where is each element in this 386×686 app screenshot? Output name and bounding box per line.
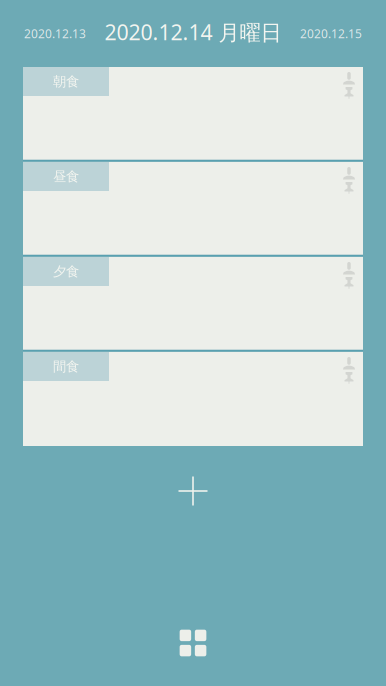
button[interactable]: 夕食 (23, 257, 363, 350)
staticText: 2020.12.15 (300, 25, 362, 41)
button[interactable]: All records (154, 615, 232, 671)
staticText: 間食 (53, 358, 79, 375)
staticText: 2020.12.13 (24, 25, 86, 41)
button[interactable]: 朝食 (23, 67, 363, 160)
button[interactable]: 間食 (23, 352, 363, 446)
staticText: 昼食 (53, 168, 79, 185)
button[interactable]: 2020.12.13 (0, 13, 94, 53)
button[interactable]: Add meal entry (154, 446, 232, 536)
staticText: 2020.12.14 月曜日 (104, 18, 281, 46)
button[interactable]: 2020.12.15 (292, 13, 386, 53)
staticText: 夕食 (53, 263, 79, 280)
button[interactable]: 昼食 (23, 162, 363, 255)
staticText: 朝食 (53, 73, 79, 90)
